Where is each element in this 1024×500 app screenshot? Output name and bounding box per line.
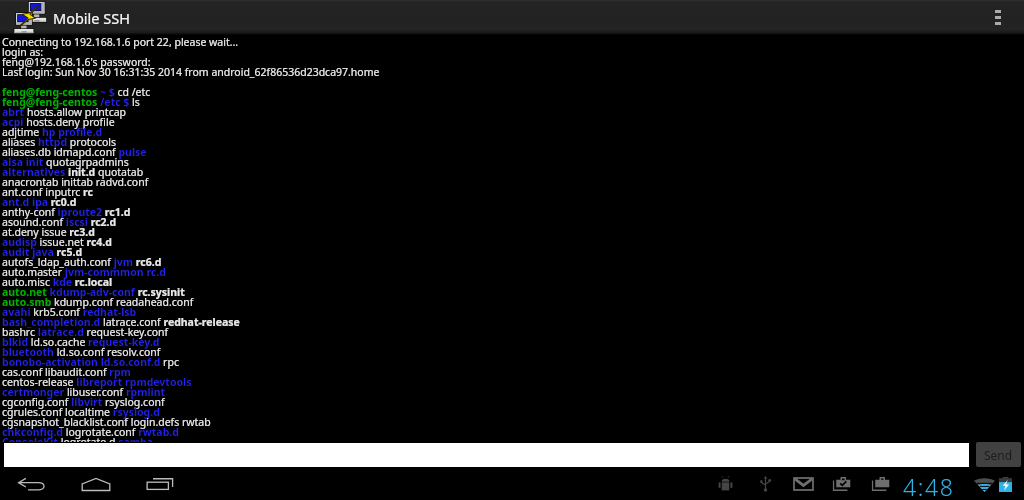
staticText: alsa init quotagrpadmins: [2, 155, 129, 169]
staticText: adjtime hp profile.d: [2, 125, 103, 139]
staticText: ant.d ipa rc0.d: [2, 195, 77, 209]
staticText: auto.master jvm-commmon rc.d: [2, 265, 166, 279]
button[interactable]: Back: [0, 468, 64, 500]
staticText: feng@192.168.1.6's password:: [2, 55, 151, 69]
staticText: certmonger libuser.conf rpmlint: [2, 385, 166, 399]
staticText: asound.conf iscsi rc2.d: [2, 215, 117, 229]
staticText: ConsoleKit logrotate.d samba: [2, 435, 153, 442]
staticText: cgsnapshot_blacklist.conf login.defs rwt…: [2, 415, 211, 429]
staticText: aliases.db idmapd.conf pulse: [2, 145, 147, 159]
button[interactable]: More options: [972, 0, 1024, 35]
staticText: Mobile SSH: [53, 8, 130, 28]
staticText: anacrontab inittab radvd.conf: [2, 175, 149, 189]
staticText: cgrules.conf localtime rsyslog.d: [2, 405, 160, 419]
staticText: auto.misc kde rc.local: [2, 275, 113, 289]
staticText: chkconfig.d logrotate.conf rwtab.d: [2, 425, 179, 439]
staticText: acpi hosts.deny profile: [2, 115, 115, 129]
button[interactable]: Home: [64, 468, 128, 500]
staticText: centos-release libreport rpmdevtools: [2, 375, 192, 389]
button[interactable]: Send: [976, 442, 1021, 467]
staticText: feng@feng-centos ~ $ cd /etc: [2, 85, 151, 99]
button[interactable]: Recent apps: [128, 468, 192, 500]
staticText: aliases httpd protocols: [2, 135, 117, 149]
staticText: Connecting to 192.168.1.6 port 22, pleas…: [2, 35, 239, 49]
staticText: bash_completion.d latrace.conf redhat-re…: [2, 315, 240, 329]
staticText: Last login: Sun Nov 30 16:31:35 2014 fro…: [2, 65, 380, 79]
staticText: cas.conf libaudit.conf rpm: [2, 365, 131, 379]
staticText: bonobo-activation ld.so.conf.d rpc: [2, 355, 179, 369]
staticText: login as:: [2, 45, 44, 59]
staticText: 4:48: [903, 471, 955, 500]
staticText: feng@feng-centos /etc $ ls: [2, 95, 140, 109]
staticText: blkid ld.so.cache request-key.d: [2, 335, 160, 349]
staticText: Send: [984, 447, 1013, 463]
staticText: audit java rc5.d: [2, 245, 83, 259]
staticText: auto.smb kdump.conf readahead.conf: [2, 295, 194, 309]
staticText: abrt hosts.allow printcap: [2, 105, 127, 119]
staticText: ant.conf inputrc rc: [2, 185, 93, 199]
staticText: anthy-conf iproute2 rc1.d: [2, 205, 131, 219]
staticText: autofs_ldap_auth.conf jvm rc6.d: [2, 255, 162, 269]
staticText: avahi krb5.conf redhat-lsb: [2, 305, 137, 319]
staticText: audisp issue.net rc4.d: [2, 235, 112, 249]
staticText: alternatives init.d quotatab: [2, 165, 144, 179]
staticText: bashrc latrace.d request-key.conf: [2, 325, 169, 339]
staticText: auto.net kdump-adv-conf rc.sysinit: [2, 285, 185, 299]
staticText: cgconfig.conf libvirt rsyslog.conf: [2, 395, 165, 409]
staticText: at.deny issue rc3.d: [2, 225, 95, 239]
staticText: bluetooth ld.so.conf resolv.conf: [2, 345, 161, 359]
